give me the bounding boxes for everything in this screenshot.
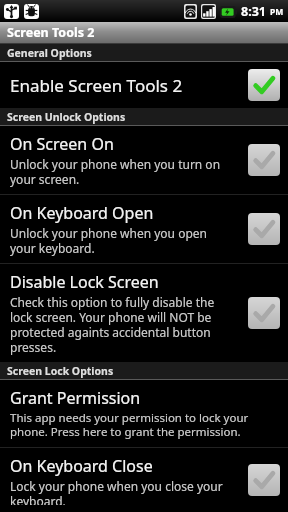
- staticText: PM: [270, 6, 284, 18]
- button[interactable]: On Keyboard Close: [0, 448, 288, 512]
- staticText: 8:31: [241, 3, 266, 20]
- staticText: Grant Permission: [10, 387, 141, 409]
- button[interactable]: Unchecked: [248, 464, 280, 496]
- staticText: Lock your phone when you close your keyb…: [10, 478, 223, 505]
- staticText: On Screen On: [10, 133, 114, 155]
- button[interactable]: Unchecked: [248, 297, 280, 329]
- staticText: General Options: [7, 46, 92, 60]
- staticText: Screen Unlock Options: [7, 110, 126, 124]
- button[interactable]: On Screen On: [0, 126, 288, 194]
- staticText: Disable Lock Screen: [10, 271, 159, 293]
- staticText: On Keyboard Open: [10, 202, 154, 224]
- button[interactable]: Unchecked: [248, 213, 280, 245]
- button[interactable]: On Keyboard Open: [0, 195, 288, 263]
- button[interactable]: Checked: [248, 69, 280, 101]
- button[interactable]: Grant Permission: [0, 380, 288, 447]
- button[interactable]: Disable Lock Screen: [0, 264, 288, 362]
- staticText: Screen Lock Options: [7, 364, 114, 378]
- button[interactable]: Unchecked: [248, 144, 280, 176]
- button[interactable]: Enable Screen Tools 2: [0, 62, 288, 108]
- staticText: On Keyboard Close: [10, 455, 153, 477]
- staticText: Check this option to fully disable the l…: [10, 294, 215, 355]
- staticText: This app needs your permission to lock y…: [10, 410, 249, 440]
- staticText: Unlock your phone when you open your key…: [10, 225, 207, 256]
- staticText: Unlock your phone when you turn on your …: [10, 156, 221, 187]
- staticText: Enable Screen Tools 2: [10, 74, 183, 97]
- staticText: Screen Tools 2: [7, 24, 95, 41]
